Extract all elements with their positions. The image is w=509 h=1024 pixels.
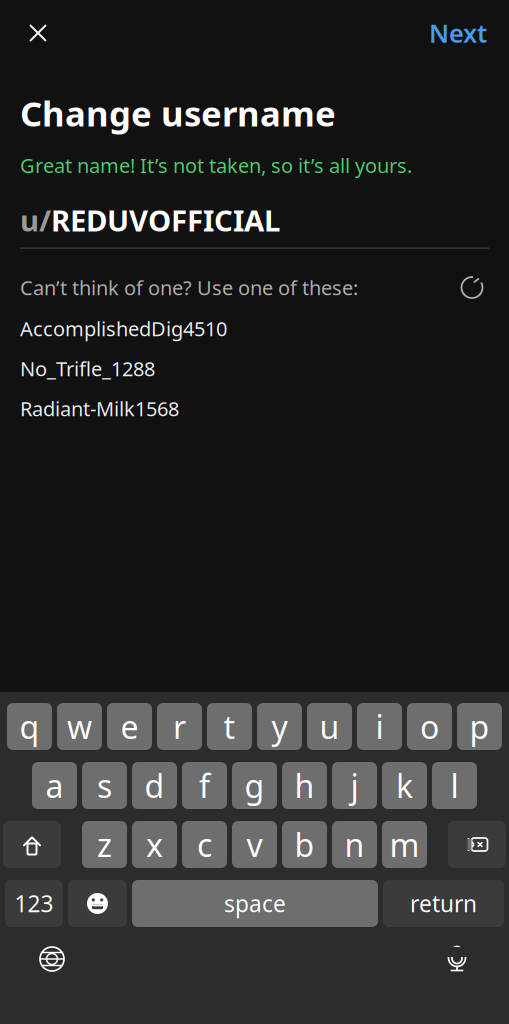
button[interactable]: Next keyboard [22,937,82,981]
staticText: n [344,823,364,866]
staticText: r [173,705,186,748]
staticText: Radiant-Milk1568 [20,395,179,422]
button[interactable]: Dictation [427,937,487,981]
staticText: q [19,705,39,748]
button[interactable]: b [282,821,327,868]
staticText: f [199,764,210,807]
button[interactable]: Close [16,11,60,55]
staticText: g [244,764,264,807]
button[interactable]: Shift [3,821,61,868]
button[interactable]: c [182,821,227,868]
button[interactable]: Emoji [68,880,127,927]
staticText: Can’t think of one? Use one of these: [20,274,358,301]
staticText: w [67,705,92,748]
staticText: m [389,823,419,866]
staticText: return [410,888,477,918]
button[interactable]: Next [423,11,493,55]
button[interactable]: return [383,880,504,927]
button[interactable]: n [332,821,377,868]
staticText: e [120,705,138,748]
staticText: space [224,888,286,918]
staticText: i [375,705,383,748]
staticText: j [350,764,358,807]
button[interactable]: h [282,762,327,809]
button[interactable]: u [307,703,352,750]
staticText: 123 [14,888,53,918]
staticText: Change username [20,90,336,136]
staticText: y [271,705,287,748]
staticText: No_Trifle_1288 [20,355,155,382]
button[interactable]: Refresh suggestions [455,270,489,304]
button[interactable]: Radiant-Milk1568 [20,388,489,428]
button[interactable]: q [7,703,52,750]
staticText: a [45,764,63,807]
button[interactable]: j [332,762,377,809]
button[interactable]: z [82,821,127,868]
button[interactable]: o [407,703,452,750]
staticText: z [97,823,112,866]
staticText: AccomplishedDig4510 [20,315,227,342]
button[interactable]: i [357,703,402,750]
button[interactable]: p [457,703,502,750]
button[interactable]: v [232,821,277,868]
button[interactable]: k [382,762,427,809]
staticText: c [197,823,212,866]
button[interactable]: g [232,762,277,809]
staticText: d [144,764,164,807]
button[interactable]: t [207,703,252,750]
button[interactable]: l [432,762,477,809]
button[interactable]: f [182,762,227,809]
staticText: p [469,705,489,748]
button[interactable]: x [132,821,177,868]
staticText: Next [429,16,487,50]
staticText: k [396,764,413,807]
staticText: REDUVOFFICIAL [51,201,280,240]
button[interactable]: y [257,703,302,750]
staticText: t [223,705,235,748]
staticText: Great name! It’s not taken, so it’s all … [20,152,412,179]
staticText: u [319,705,339,748]
button[interactable]: m [382,821,427,868]
staticText: u/ [20,201,51,240]
staticText: h [294,764,314,807]
button[interactable]: d [132,762,177,809]
staticText: v [246,823,262,866]
staticText: s [97,764,112,807]
button[interactable]: AccomplishedDig4510 [20,308,489,348]
staticText: l [450,764,458,807]
button[interactable]: a [32,762,77,809]
button[interactable]: w [57,703,102,750]
button[interactable]: No_Trifle_1288 [20,348,489,388]
button[interactable]: r [157,703,202,750]
staticText: b [294,823,314,866]
staticText: x [146,823,163,866]
button[interactable]: Delete [448,821,506,868]
button[interactable]: s [82,762,127,809]
staticText: o [420,705,439,748]
button[interactable]: space [132,880,378,927]
button[interactable]: 123 [5,880,63,927]
button[interactable]: e [107,703,152,750]
